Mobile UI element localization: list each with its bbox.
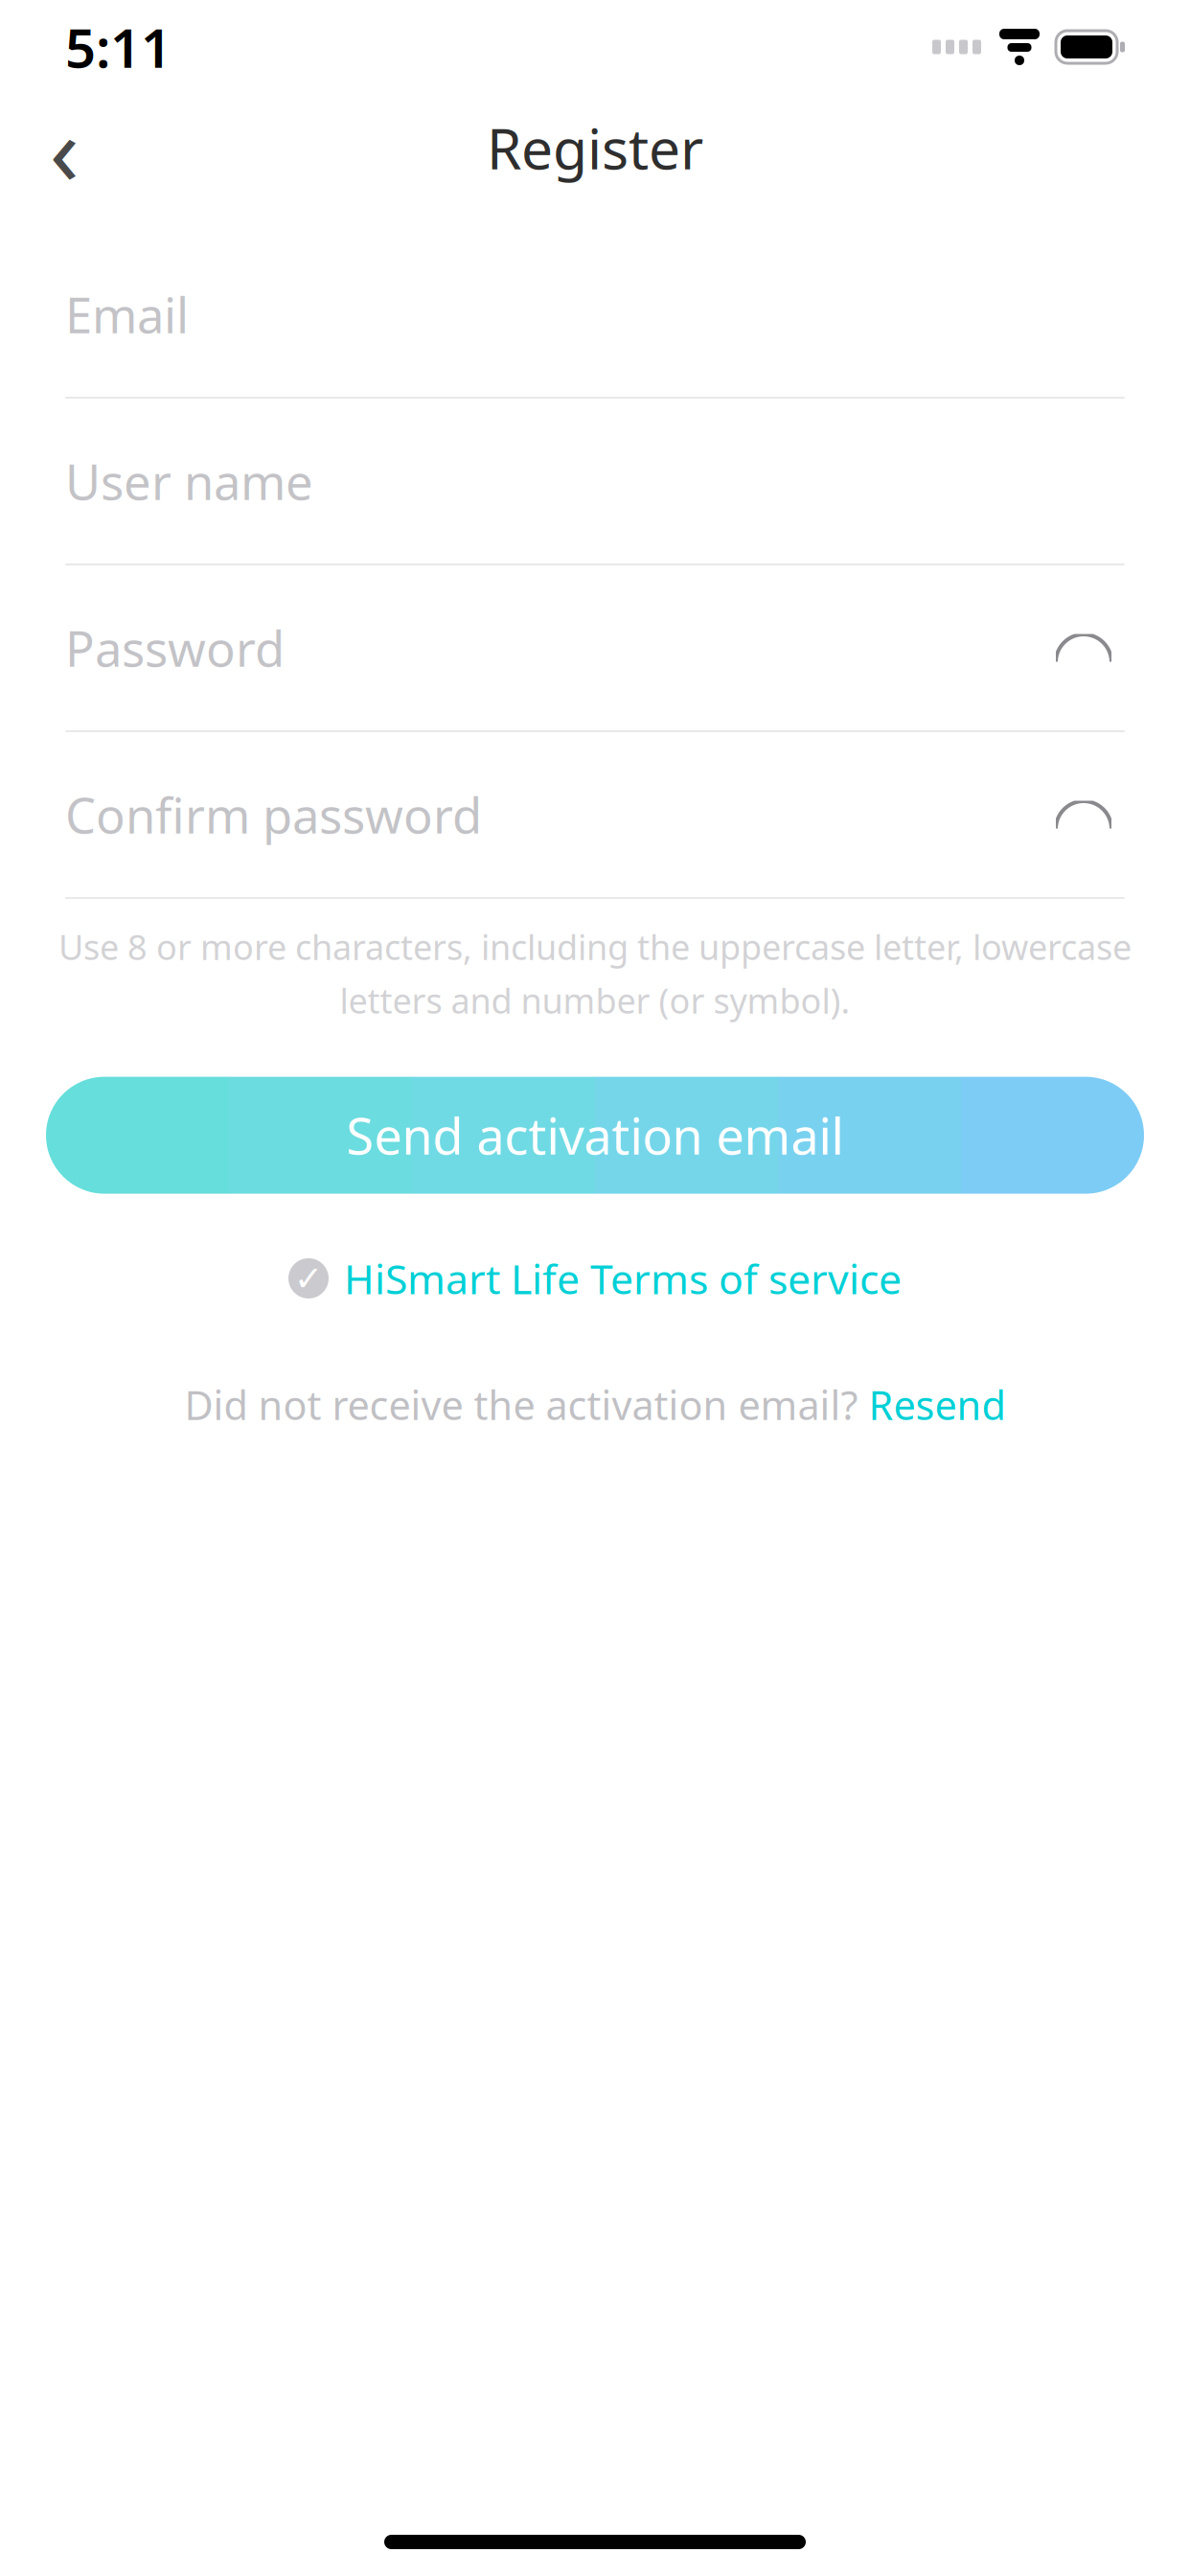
staticText: Confirm password <box>65 782 482 847</box>
staticText: Password <box>65 616 285 680</box>
staticText: Did not receive the activation email? <box>184 1378 869 1431</box>
staticText: 5:11 <box>65 11 172 83</box>
staticText: ‹ <box>49 83 79 212</box>
staticText: ✓ <box>294 1259 323 1298</box>
staticText: User name <box>65 449 313 513</box>
button[interactable]: Back <box>21 102 107 194</box>
staticText: Resend <box>869 1378 1006 1431</box>
button[interactable]: Did not receive the activation email? <box>173 1369 1017 1441</box>
staticText: letters and number (or symbol). <box>340 977 850 1023</box>
button[interactable]: ✓ <box>277 1242 913 1315</box>
button[interactable]: Show password <box>1042 607 1125 689</box>
staticText: HiSmart Life Terms of service <box>344 1251 902 1306</box>
staticText: Register <box>487 110 703 185</box>
button[interactable]: Show password <box>1042 773 1125 856</box>
staticText: Use 8 or more characters, including the … <box>58 924 1132 970</box>
staticText: Send activation email <box>346 1102 844 1168</box>
staticText: Email <box>65 282 189 347</box>
button[interactable]: Send activation email <box>46 1077 1144 1194</box>
